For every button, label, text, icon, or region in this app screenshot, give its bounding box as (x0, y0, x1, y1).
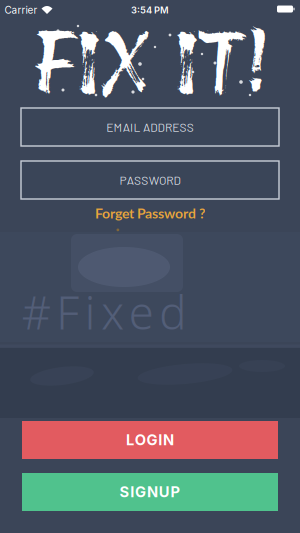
button[interactable]: Forget Password ? (95, 205, 205, 221)
staticText: EMAIL ADDRESS (106, 120, 194, 134)
staticText: LOGIN (126, 431, 174, 449)
staticText: 3:54 PM (131, 4, 169, 16)
button[interactable]: LOGIN (22, 421, 278, 459)
staticText: PASSWORD (119, 173, 181, 187)
staticText: #Fixed (22, 281, 186, 343)
staticText: Forget Password ? (95, 205, 205, 221)
button[interactable]: PASSWORD (21, 161, 279, 199)
button[interactable]: EMAIL ADDRESS (21, 108, 279, 146)
button[interactable]: SIGNUP (22, 473, 278, 511)
staticText: SIGNUP (119, 483, 180, 501)
staticText: Carrier (4, 4, 37, 16)
staticText: FIX IT! (29, 12, 270, 112)
